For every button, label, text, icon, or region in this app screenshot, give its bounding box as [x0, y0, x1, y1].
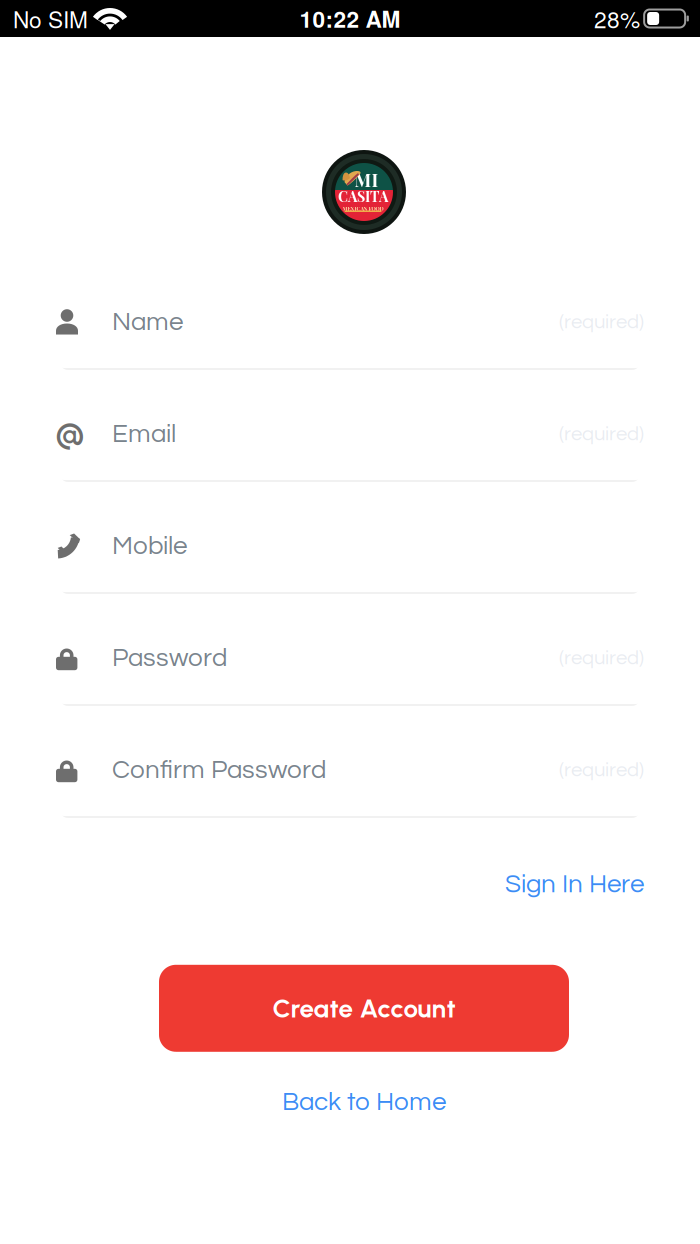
staticText: (required) — [559, 648, 644, 668]
staticText: Confirm Password — [112, 757, 326, 783]
staticText: Back to Home — [282, 1089, 446, 1116]
staticText: MEXICAN FOOD — [342, 205, 383, 212]
button[interactable]: Create Account — [159, 965, 569, 1052]
button[interactable]: Name — [56, 276, 644, 368]
staticText: @ — [55, 415, 84, 454]
staticText: CASITA — [338, 187, 388, 206]
button[interactable]: @ — [56, 388, 644, 480]
staticText: (required) — [559, 424, 644, 444]
staticText: Name — [112, 309, 183, 335]
staticText: Email — [112, 421, 176, 447]
button[interactable]: Mobile — [56, 500, 644, 592]
staticText: (required) — [559, 312, 644, 332]
staticText: Sign In Here — [505, 871, 644, 898]
staticText: Create Account — [272, 993, 455, 1024]
button[interactable]: Sign In Here — [505, 871, 644, 898]
staticText: Mobile — [112, 533, 187, 559]
staticText: MI — [354, 168, 378, 192]
staticText: Password — [112, 645, 227, 671]
staticText: (required) — [559, 760, 644, 780]
button[interactable]: Password — [56, 612, 644, 704]
staticText: No SIM — [13, 2, 88, 35]
staticText: 10:22 AM — [299, 2, 400, 35]
button[interactable]: Confirm Password — [56, 724, 644, 816]
button[interactable]: Back to Home — [282, 1089, 446, 1116]
staticText: 28% — [594, 2, 640, 35]
